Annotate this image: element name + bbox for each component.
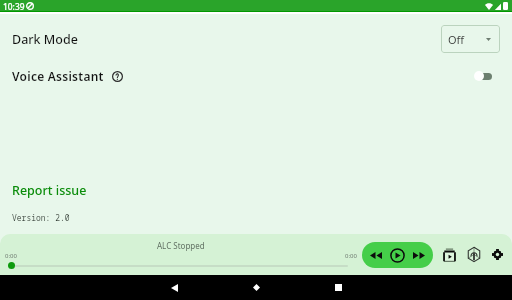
button[interactable]: Recent apps: [297, 275, 379, 300]
button[interactable]: Cast: [464, 245, 483, 264]
staticText: 0:00: [345, 252, 357, 260]
button[interactable]: Library: [440, 245, 459, 264]
button[interactable]: Back: [133, 275, 215, 300]
button[interactable]: Settings: [488, 245, 507, 264]
button[interactable]: Playback controls: [362, 242, 433, 268]
staticText: Version: 2.0: [12, 212, 70, 223]
button[interactable]: Report issue: [12, 182, 87, 199]
staticText: Voice Assistant: [12, 68, 104, 84]
staticText: Dark Mode: [12, 31, 78, 48]
staticText: Off: [448, 32, 465, 47]
staticText: 10:39: [3, 1, 25, 12]
button[interactable]: Help: [109, 68, 125, 84]
button[interactable]: Voice Assistant: [466, 66, 492, 86]
staticText: ALC Stopped: [157, 240, 205, 251]
staticText: Report issue: [12, 182, 87, 199]
staticText: 0:00: [5, 252, 17, 260]
button[interactable]: Home: [215, 275, 297, 300]
button[interactable]: Off: [441, 25, 500, 53]
